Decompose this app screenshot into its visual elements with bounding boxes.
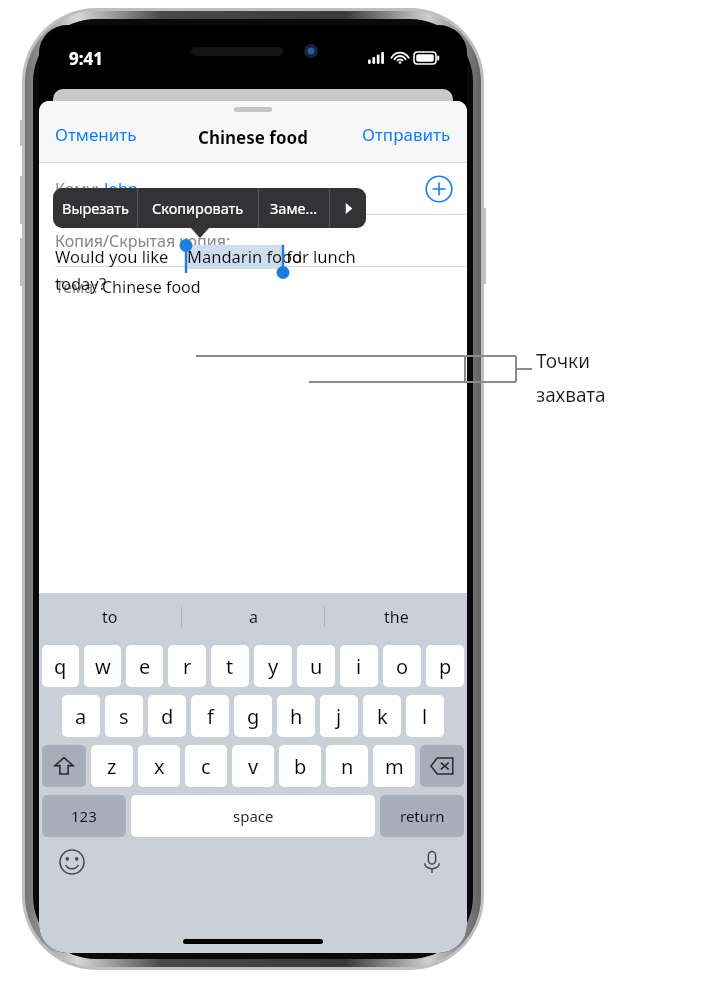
button[interactable]: e [126,645,163,687]
staticText: Chinese food [102,276,201,298]
staticText: y [268,653,279,680]
staticText: m [385,753,404,780]
button[interactable]: o [383,645,421,687]
staticText: Mandarin food [187,245,303,267]
staticText: the [384,606,409,628]
button[interactable]: a [62,695,100,737]
button[interactable]: Вырезать [53,188,137,228]
button[interactable]: z [91,745,133,787]
button[interactable]: Отправить [352,113,467,152]
staticText: for lunch [282,245,356,267]
staticText: r [183,653,192,680]
staticText: i [356,653,362,680]
staticText: Тема: [55,276,102,298]
button[interactable]: d [148,695,186,737]
staticText: l [422,703,428,730]
staticText: Chinese food [198,126,308,149]
staticText: d [161,703,174,730]
staticText: c [201,753,211,780]
staticText: t [226,653,234,680]
staticText: p [439,653,452,680]
button[interactable]: Add recipient [425,175,453,203]
button[interactable]: Chinese food [198,126,308,149]
button[interactable]: to [39,593,181,641]
staticText: z [107,753,117,780]
button[interactable]: 123 [42,795,126,837]
staticText: 9:41 [69,47,103,70]
button[interactable]: j [320,695,358,737]
staticText: Точки [536,348,590,374]
button[interactable]: x [138,745,180,787]
staticText: n [341,753,354,780]
staticText: 123 [71,806,97,826]
button[interactable]: a [182,593,324,641]
button[interactable]: l [406,695,444,737]
staticText: u [310,653,323,680]
staticText: Скопировать [152,198,244,218]
button[interactable]: n [326,745,368,787]
staticText: x [154,753,165,780]
staticText: Копия/Скрытая копия: [55,230,231,252]
staticText: k [377,703,388,730]
button[interactable]: Скопировать [138,188,258,228]
button[interactable]: s [105,695,143,737]
staticText: Would you like [55,245,173,267]
staticText: space [233,806,274,826]
staticText: захвата [536,382,606,408]
button[interactable]: Dictation [419,849,445,875]
button[interactable]: the [325,593,467,641]
staticText: Вырезать [62,198,129,218]
button[interactable]: More [330,188,366,228]
button[interactable]: Заме... [259,188,329,228]
staticText: j [336,703,342,730]
button[interactable]: r [168,645,206,687]
staticText: Заме... [270,198,318,218]
staticText: g [247,703,260,730]
button[interactable]: return [380,795,464,837]
staticText: q [54,653,67,680]
staticText: f [207,703,214,730]
staticText: return [400,806,445,826]
button[interactable]: q [42,645,79,687]
staticText: Отменить [55,123,137,146]
staticText: v [248,753,259,780]
button[interactable]: Отменить [39,113,147,152]
button[interactable]: u [297,645,335,687]
button[interactable]: i [340,645,378,687]
button[interactable]: k [363,695,401,737]
button[interactable]: w [84,645,121,687]
button[interactable]: c [185,745,227,787]
button[interactable]: p [426,645,464,687]
button[interactable]: y [254,645,292,687]
staticText: Отправить [362,123,451,146]
button[interactable]: space [131,795,375,837]
button[interactable]: Shift [42,745,86,787]
button[interactable]: f [191,695,229,737]
staticText: s [119,703,129,730]
staticText: today? [55,272,107,294]
staticText: John [104,178,138,200]
button[interactable]: g [234,695,272,737]
button[interactable]: Backspace [420,745,464,787]
button[interactable]: Emoji [59,849,85,875]
staticText: to [102,606,118,628]
button[interactable]: h [277,695,315,737]
staticText: b [294,753,307,780]
button[interactable]: m [373,745,415,787]
staticText: w [95,653,111,680]
button[interactable]: b [279,745,321,787]
staticText: a [75,703,87,730]
button[interactable]: v [232,745,274,787]
staticText: Кому: [55,178,104,200]
staticText: h [290,703,303,730]
staticText: a [249,606,258,628]
staticText: e [139,653,151,680]
button[interactable]: t [211,645,249,687]
staticText: o [396,653,409,680]
